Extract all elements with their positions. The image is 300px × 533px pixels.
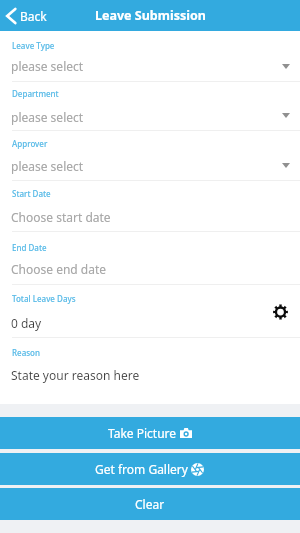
staticText: End Date xyxy=(12,242,47,253)
staticText: Leave Type xyxy=(12,40,55,51)
button[interactable]: End Date xyxy=(0,232,300,285)
button[interactable]: Reason xyxy=(0,338,300,404)
button[interactable]: Take Picture xyxy=(0,417,300,449)
button[interactable]: Back xyxy=(0,4,55,28)
button[interactable]: Get from Gallery xyxy=(0,453,300,485)
staticText: Leave Submission xyxy=(95,7,206,24)
button[interactable]: Department xyxy=(0,82,300,131)
staticText: Choose end date xyxy=(11,261,107,277)
staticText: Get from Gallery xyxy=(95,461,188,477)
button[interactable]: Approver xyxy=(0,131,300,181)
staticText: Take Picture xyxy=(108,425,177,441)
staticText: Total Leave Days xyxy=(12,293,76,304)
staticText: please select xyxy=(11,109,84,125)
other: Settings xyxy=(273,304,288,320)
staticText: Reason xyxy=(12,347,41,358)
staticText: Start Date xyxy=(12,188,51,199)
staticText: please select xyxy=(11,158,84,174)
staticText: Back xyxy=(20,8,47,24)
staticText: Approver xyxy=(12,138,48,149)
staticText: State your reason here xyxy=(11,367,140,383)
staticText: Choose start date xyxy=(11,209,111,225)
staticText: Department xyxy=(12,88,59,99)
button[interactable]: Clear xyxy=(0,488,300,520)
button[interactable]: Start Date xyxy=(0,181,300,232)
staticText: 0 day xyxy=(11,315,42,331)
button[interactable]: Leave Type xyxy=(0,31,300,82)
button[interactable]: Total Leave Days xyxy=(0,285,300,338)
staticText: please select xyxy=(11,58,84,74)
staticText: Clear xyxy=(135,496,165,512)
